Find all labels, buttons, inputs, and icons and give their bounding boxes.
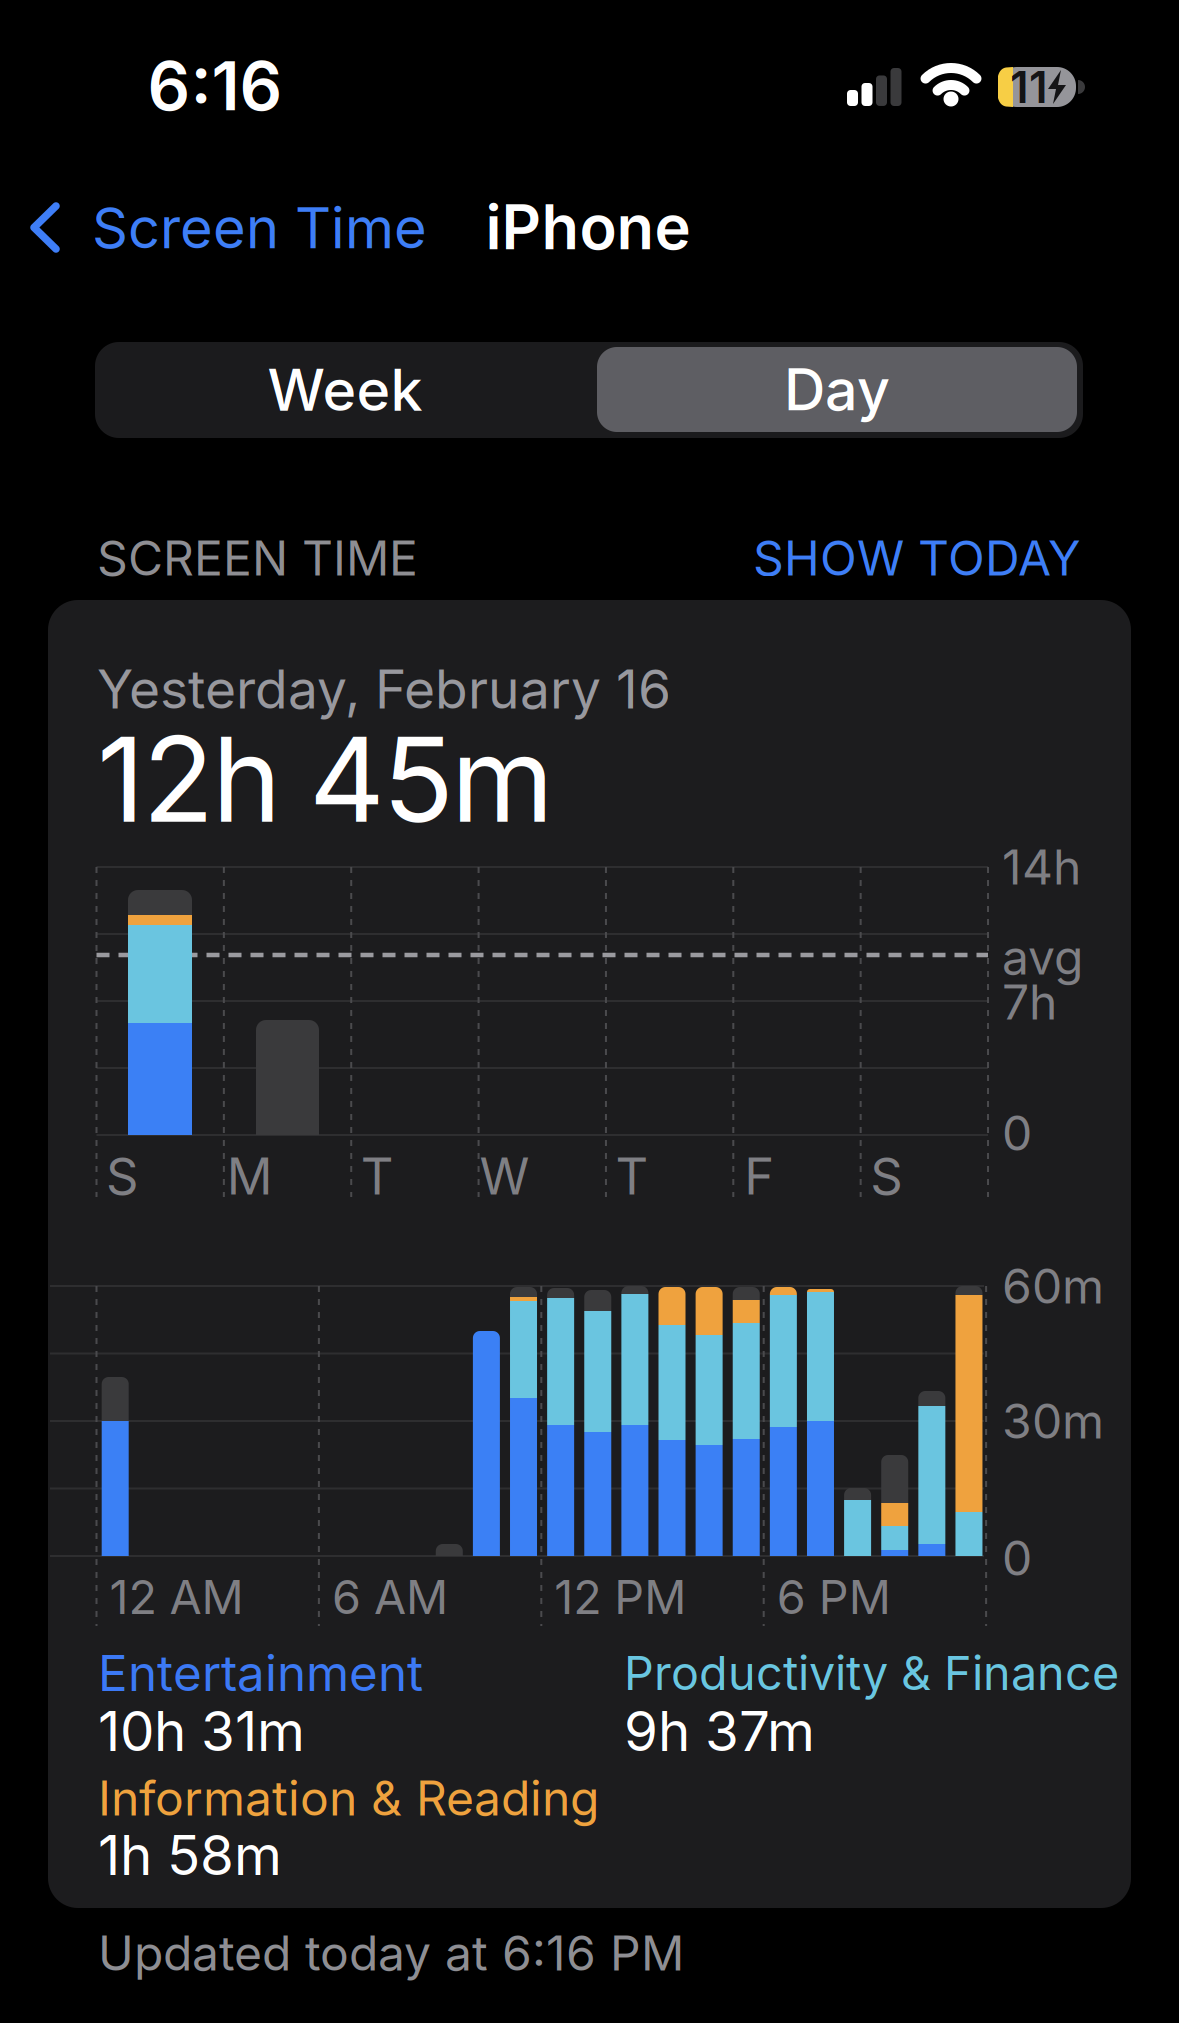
staticText: M [227, 1146, 273, 1206]
staticText: 11 [1010, 61, 1048, 113]
staticText: Productivity & Finance [624, 1645, 1119, 1701]
staticText: Updated today at 6:16 PM [98, 1925, 684, 1981]
staticText: 14h [1002, 839, 1081, 895]
button[interactable]: Back [20, 201, 460, 255]
staticText: F [744, 1146, 774, 1206]
staticText: Entertainment [98, 1644, 423, 1702]
staticText: 9h 37m [624, 1699, 815, 1763]
staticText: 12 PM [554, 1569, 686, 1625]
staticText: SHOW TODAY [753, 530, 1081, 586]
button[interactable]: Day [597, 347, 1077, 432]
staticText: Information & Reading [98, 1770, 599, 1826]
staticText: 60m [1002, 1258, 1104, 1314]
staticText: T [615, 1146, 648, 1206]
staticText: S [870, 1146, 903, 1206]
staticText: 10h 31m [98, 1699, 305, 1763]
staticText: iPhone [485, 191, 690, 263]
staticText: avg [1002, 929, 1083, 985]
staticText: 6:16 [147, 47, 282, 125]
staticText: W [480, 1146, 530, 1206]
staticText: Day [784, 356, 890, 423]
staticText: SCREEN TIME [97, 530, 418, 586]
staticText: 1h 58m [98, 1823, 282, 1887]
staticText: Week [267, 356, 422, 424]
staticText: Yesterday, February 16 [97, 657, 671, 720]
staticText: 6 AM [332, 1569, 448, 1625]
staticText: 7h [1002, 974, 1057, 1030]
staticText: S [106, 1146, 139, 1206]
staticText: 0 [1002, 1105, 1032, 1161]
staticText: 30m [1002, 1393, 1104, 1449]
staticText: Screen Time [92, 195, 427, 261]
staticText: 12h 45m [97, 710, 554, 848]
staticText: T [361, 1146, 394, 1206]
staticText: 12 AM [109, 1569, 243, 1625]
staticText: 0 [1002, 1530, 1032, 1586]
staticText: 6 PM [777, 1569, 891, 1625]
button[interactable]: Week [105, 342, 585, 438]
button[interactable]: SHOW TODAY [681, 530, 1081, 586]
